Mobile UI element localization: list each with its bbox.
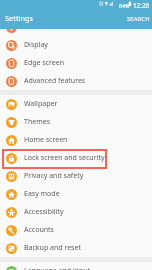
staticText: Notifications [24, 22, 66, 32]
staticText: Accounts [24, 225, 54, 235]
staticText: Display [24, 40, 48, 50]
button[interactable]: Home screen [0, 131, 152, 149]
button[interactable]: Accounts [0, 221, 152, 239]
button[interactable]: SEARCH [121, 13, 152, 26]
button[interactable]: Advanced features [0, 72, 152, 90]
button[interactable]: Edge screen [0, 54, 152, 72]
button[interactable]: Notifications [0, 18, 152, 36]
staticText: Language and input [24, 266, 91, 270]
staticText: Backup and reset [24, 243, 81, 253]
button[interactable]: Accessibility [0, 203, 152, 221]
staticText: Privacy and safety [24, 171, 84, 181]
staticText: Themes [24, 117, 51, 127]
button[interactable]: Themes [0, 113, 152, 131]
staticText: SEARCH [127, 15, 150, 23]
button[interactable]: Wallpaper [0, 95, 152, 113]
button[interactable]: Display [0, 36, 152, 54]
staticText: Accessibility [24, 207, 64, 217]
staticText: Lock screen and security [24, 153, 105, 163]
staticText: Easy mode [24, 189, 60, 199]
button[interactable]: Privacy and safety [0, 167, 152, 185]
staticText: 64% [119, 2, 130, 9]
button[interactable]: Backup and reset [0, 239, 152, 257]
staticText: 12:26 [133, 1, 150, 10]
staticText: Advanced features [24, 76, 86, 86]
button[interactable]: Language and input [0, 262, 152, 270]
button[interactable]: Lock screen and security [0, 149, 152, 167]
staticText: Home screen [24, 135, 68, 145]
staticText: Wallpaper [24, 99, 58, 109]
staticText: Edge screen [24, 58, 64, 68]
staticText: Settings [5, 13, 34, 23]
button[interactable]: Easy mode [0, 185, 152, 203]
